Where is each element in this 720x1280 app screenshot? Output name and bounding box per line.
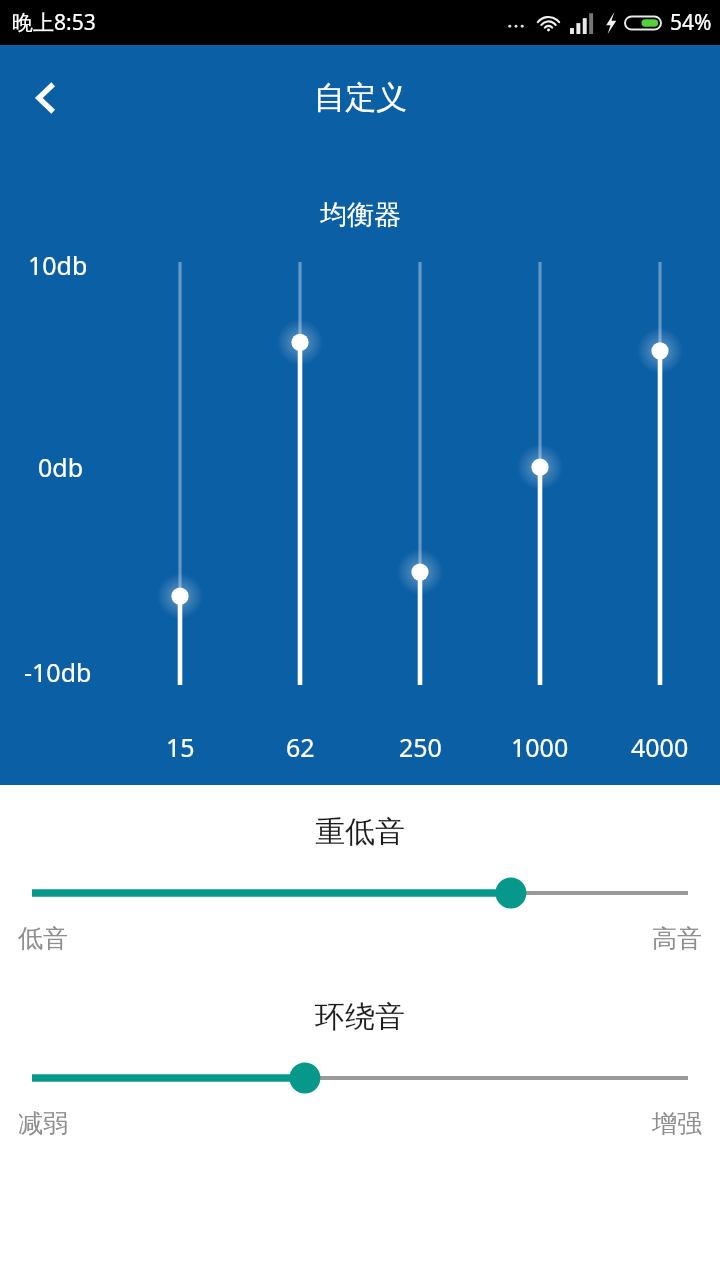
staticText: 0db xyxy=(38,450,84,484)
button[interactable]: Back xyxy=(8,60,84,136)
staticText: 均衡器 xyxy=(320,198,401,232)
staticText: -10db xyxy=(24,655,92,689)
staticText: 低音 xyxy=(18,923,68,954)
staticText: 晚上8:53 xyxy=(12,8,96,37)
staticText: 1000 xyxy=(511,730,569,764)
staticText: 4000 xyxy=(631,730,689,764)
staticText: 10db xyxy=(28,248,88,282)
staticText: 环绕音 xyxy=(315,998,405,1036)
staticText: 自定义 xyxy=(314,78,407,117)
staticText: 重低音 xyxy=(315,813,405,851)
button[interactable] xyxy=(0,1058,720,1098)
staticText: 减弱 xyxy=(18,1108,68,1139)
staticText: 高音 xyxy=(652,923,702,954)
staticText: 62 xyxy=(286,730,315,764)
staticText: 250 xyxy=(399,730,442,764)
staticText: 增强 xyxy=(652,1108,702,1139)
staticText: 15 xyxy=(166,730,195,764)
button[interactable] xyxy=(0,873,720,913)
staticText: 54% xyxy=(670,8,712,37)
